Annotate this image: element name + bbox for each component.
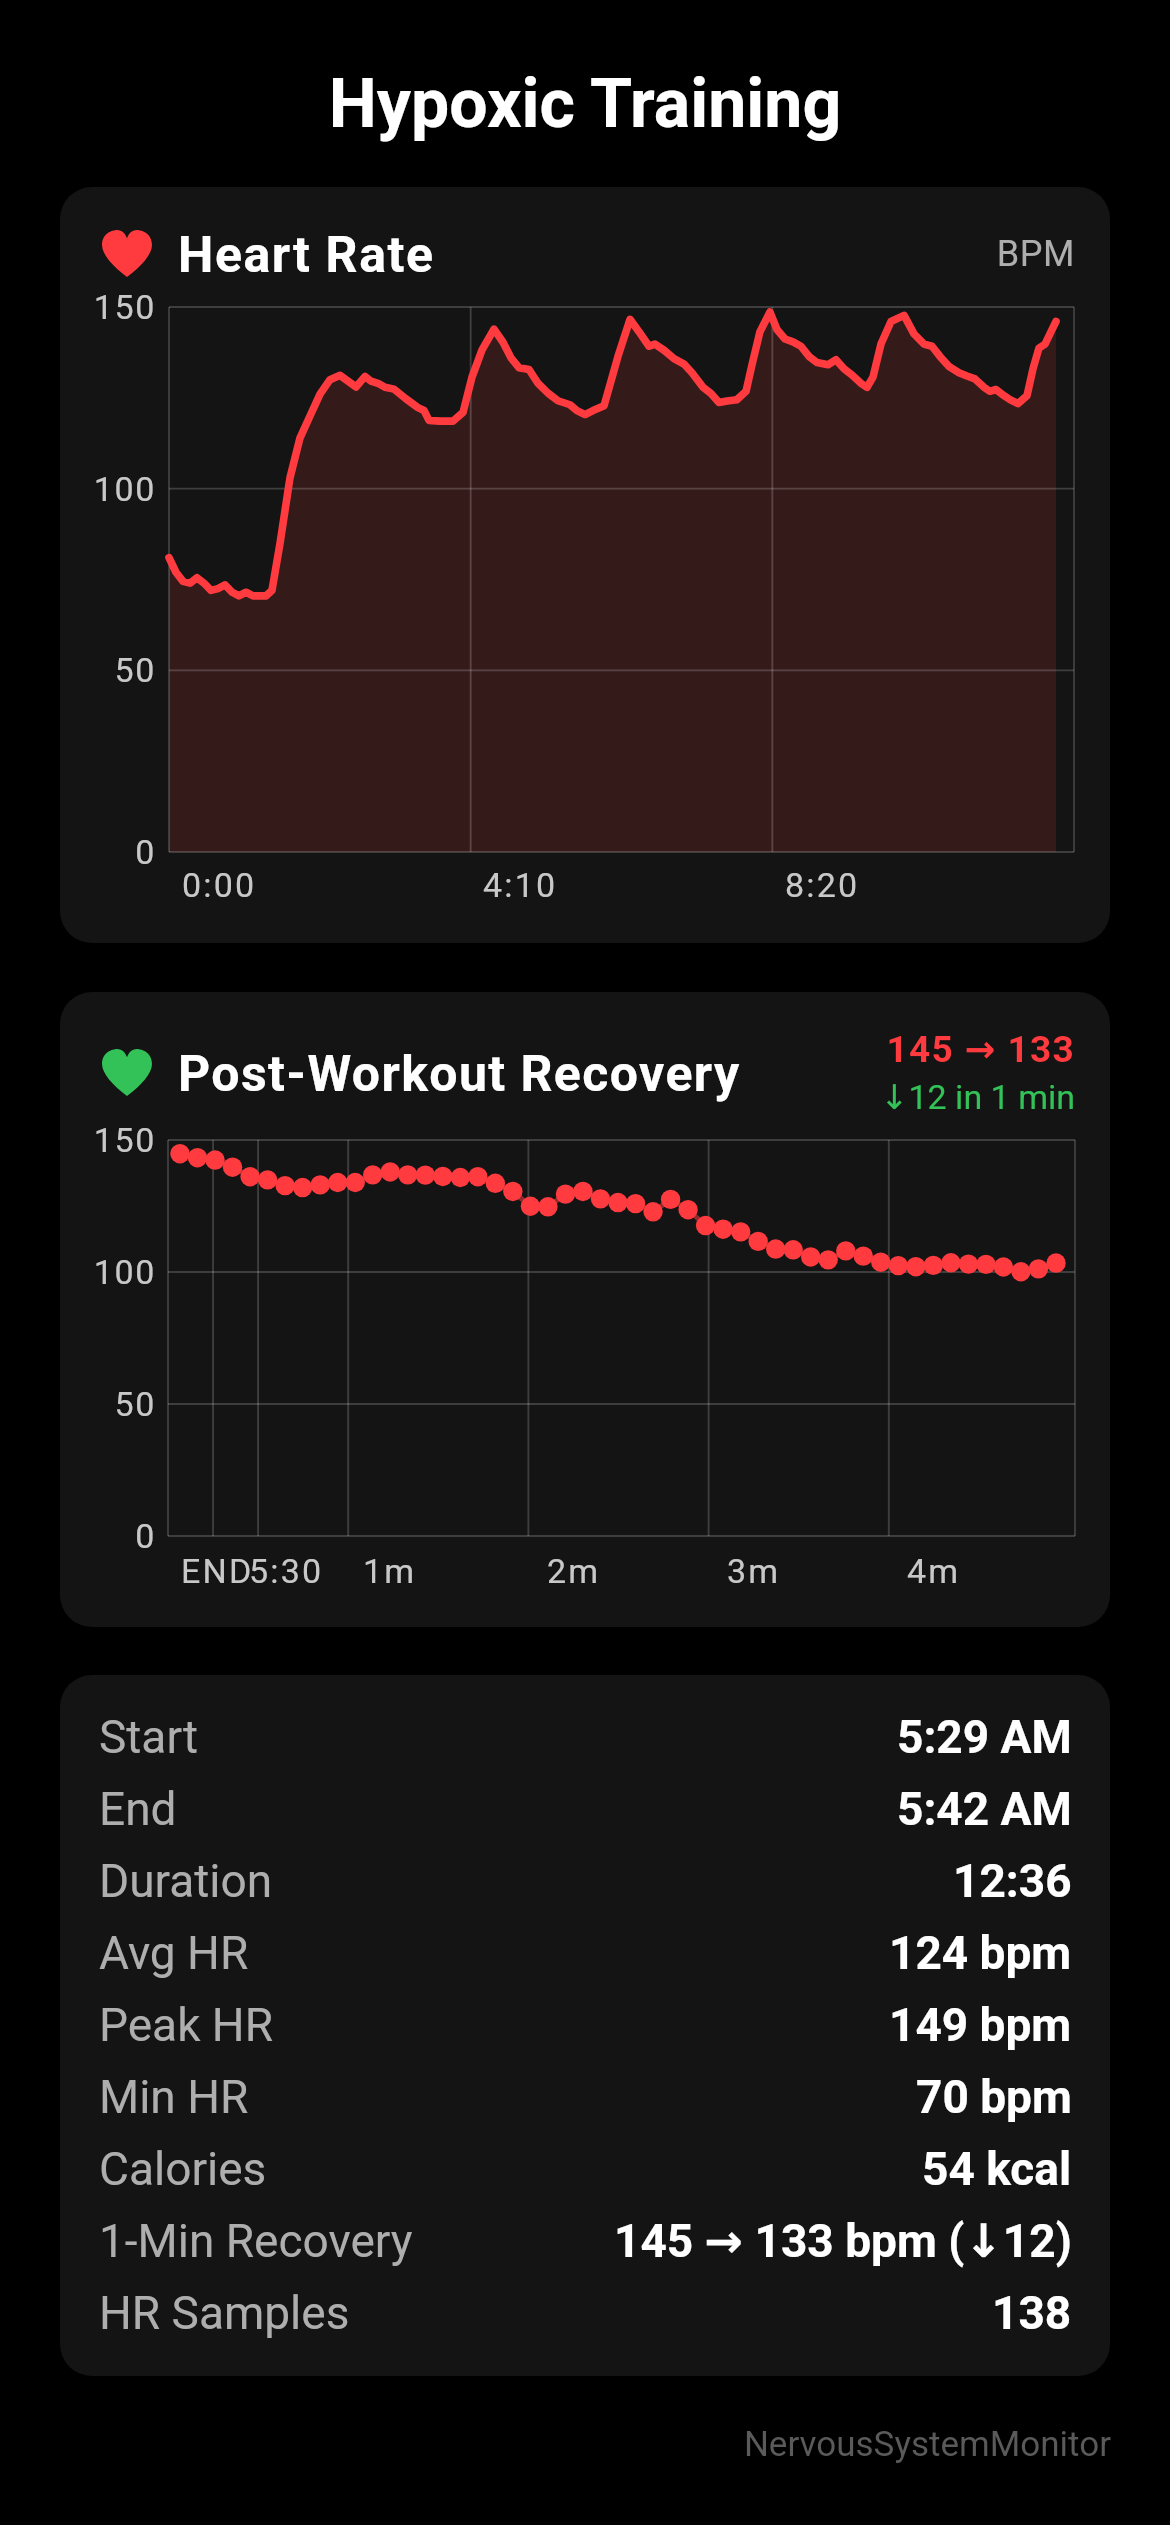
other: Recovery (102, 1049, 152, 1096)
button[interactable]: Duration (60, 1845, 1110, 1917)
staticText: Heart Rate (178, 226, 435, 285)
staticText: 100 (60, 1252, 156, 1292)
button[interactable]: Calories (60, 2133, 1110, 2205)
staticText: 150 (60, 287, 156, 327)
staticText: Post-Workout Recovery (178, 1045, 741, 1104)
staticText: 145 → 133 (675, 1028, 1075, 1071)
staticText: 138 (992, 2286, 1072, 2340)
staticText: 70 bpm (916, 2070, 1072, 2124)
staticText: 3m (727, 1551, 781, 1591)
staticText: 4:10 (483, 865, 558, 905)
button[interactable]: Recovery (60, 992, 1110, 1627)
button[interactable]: HR Samples (60, 2277, 1110, 2349)
staticText: Avg HR (99, 1926, 249, 1980)
staticText: 0 (60, 1516, 156, 1556)
staticText: 50 (60, 1384, 156, 1424)
button[interactable]: 1-Min Recovery (60, 2205, 1110, 2277)
button[interactable]: Heart rate (60, 187, 1110, 943)
staticText: 54 kcal (922, 2142, 1072, 2196)
button[interactable]: Min HR (60, 2061, 1110, 2133)
staticText: 5:29 AM (897, 1710, 1072, 1764)
staticText: 0:00 (182, 865, 257, 905)
staticText: NervousSystemMonitor (511, 2424, 1111, 2465)
staticText: 1-Min Recovery (99, 2214, 413, 2268)
staticText: End (99, 1782, 177, 1836)
staticText: END (181, 1551, 254, 1591)
staticText: Hypoxic Training (0, 64, 1170, 144)
staticText: Peak HR (99, 1998, 274, 2052)
other: Heart rate (102, 230, 152, 277)
staticText: Start (99, 1710, 199, 1764)
staticText: 12:36 (953, 1854, 1072, 1908)
staticText: ↓12 in 1 min (675, 1077, 1075, 1117)
staticText: 4m (907, 1551, 961, 1591)
staticText: 8:20 (785, 865, 860, 905)
staticText: 150 (60, 1120, 156, 1160)
staticText: 0 (60, 832, 156, 872)
staticText: 5:30 (249, 1551, 324, 1591)
button[interactable]: End (60, 1773, 1110, 1845)
staticText: HR Samples (99, 2286, 350, 2340)
button[interactable]: Start (60, 1701, 1110, 1773)
staticText: BPM (475, 233, 1075, 275)
staticText: 149 bpm (889, 1998, 1072, 2052)
staticText: 1m (363, 1551, 417, 1591)
staticText: Duration (99, 1854, 273, 1908)
staticText: Calories (99, 2142, 267, 2196)
staticText: 5:42 AM (897, 1782, 1072, 1836)
staticText: 100 (60, 469, 156, 509)
staticText: 50 (60, 650, 156, 690)
staticText: 145 → 133 bpm (↓12) (614, 2214, 1072, 2268)
staticText: 124 bpm (889, 1926, 1072, 1980)
staticText: Min HR (99, 2070, 249, 2124)
staticText: 2m (547, 1551, 601, 1591)
button[interactable]: Peak HR (60, 1989, 1110, 2061)
button[interactable]: Avg HR (60, 1917, 1110, 1989)
